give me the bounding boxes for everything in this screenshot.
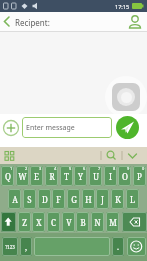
- button[interactable]: U: [89, 166, 102, 186]
- button[interactable]: M: [106, 212, 119, 232]
- button[interactable]: A: [8, 189, 21, 209]
- button[interactable]: Z: [18, 212, 31, 232]
- button[interactable]: ?123: [2, 237, 18, 256]
- button[interactable]: X: [32, 212, 45, 232]
- staticText: Recipent:: [15, 17, 50, 28]
- staticText: Z: [22, 217, 27, 228]
- button[interactable]: [104, 149, 119, 162]
- staticText: 7: [98, 166, 101, 171]
- button[interactable]: [126, 13, 144, 31]
- staticText: J: [101, 194, 104, 205]
- button[interactable]: N: [91, 212, 104, 232]
- staticText: L: [130, 194, 135, 205]
- staticText: G: [71, 194, 77, 205]
- staticText: 8: [113, 166, 116, 171]
- button[interactable]: ,: [20, 237, 32, 256]
- staticText: K: [115, 194, 121, 205]
- staticText: B: [80, 217, 86, 228]
- button[interactable]: [3, 149, 16, 162]
- button[interactable]: D: [38, 189, 51, 209]
- button[interactable]: [112, 83, 140, 111]
- button[interactable]: E: [30, 166, 43, 186]
- button[interactable]: O: [118, 166, 131, 186]
- staticText: A: [12, 194, 18, 205]
- button[interactable]: G: [67, 189, 80, 209]
- button[interactable]: I: [104, 166, 117, 186]
- button[interactable]: C: [47, 212, 60, 232]
- staticText: 0: [142, 166, 145, 171]
- button[interactable]: [125, 149, 141, 162]
- staticText: 6: [83, 166, 86, 171]
- staticText: T: [64, 171, 69, 182]
- staticText: N: [94, 217, 101, 228]
- button[interactable]: H: [82, 189, 95, 209]
- staticText: X: [36, 217, 42, 228]
- staticText: 5: [69, 166, 72, 171]
- button[interactable]: [127, 237, 146, 256]
- staticText: P: [137, 171, 142, 182]
- button[interactable]: [34, 237, 110, 256]
- button[interactable]: .: [112, 237, 124, 256]
- button[interactable]: L: [126, 189, 139, 209]
- staticText: 2: [25, 166, 28, 171]
- button[interactable]: [0, 12, 14, 31]
- staticText: 1: [10, 166, 13, 171]
- button[interactable]: P: [133, 166, 146, 186]
- button[interactable]: T: [60, 166, 73, 186]
- button[interactable]: Enter message: [22, 117, 112, 138]
- button[interactable]: J: [96, 189, 109, 209]
- button[interactable]: R: [45, 166, 58, 186]
- staticText: F: [56, 194, 61, 205]
- staticText: Q: [5, 171, 11, 182]
- staticText: H: [85, 194, 92, 205]
- button[interactable]: W: [16, 166, 29, 186]
- staticText: I: [109, 171, 112, 182]
- staticText: Y: [78, 171, 83, 182]
- staticText: Enter message: [26, 123, 75, 133]
- staticText: 17:15: [115, 3, 130, 10]
- staticText: S: [27, 194, 32, 205]
- staticText: U: [93, 171, 99, 182]
- button[interactable]: S: [23, 189, 36, 209]
- button[interactable]: [2, 119, 20, 137]
- staticText: R: [49, 171, 55, 182]
- button[interactable]: [116, 116, 139, 139]
- staticText: 4: [54, 166, 57, 171]
- staticText: O: [122, 171, 128, 182]
- button[interactable]: Q: [1, 166, 14, 186]
- button[interactable]: F: [52, 189, 65, 209]
- button[interactable]: [1, 212, 16, 232]
- staticText: ?123: [5, 244, 15, 250]
- staticText: E: [34, 171, 39, 182]
- staticText: 9: [127, 166, 130, 171]
- button[interactable]: [122, 212, 147, 232]
- staticText: .: [117, 241, 119, 252]
- staticText: ,: [25, 241, 27, 252]
- button[interactable]: K: [111, 189, 124, 209]
- staticText: D: [42, 194, 48, 205]
- staticText: M: [109, 217, 117, 228]
- staticText: W: [18, 171, 27, 182]
- button[interactable]: Y: [74, 166, 87, 186]
- staticText: V: [66, 217, 72, 228]
- staticText: 3: [39, 166, 42, 171]
- button[interactable]: B: [76, 212, 89, 232]
- button[interactable]: V: [62, 212, 75, 232]
- staticText: C: [51, 217, 56, 228]
